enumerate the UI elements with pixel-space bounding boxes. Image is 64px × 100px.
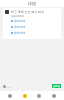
button[interactable]: 去处理 <box>52 84 61 88</box>
staticText: 审批详情 <box>14 31 26 35</box>
staticText: 张三 李四 王五 赵六 钱七 <box>11 10 45 14</box>
staticText: 审批详情 <box>14 25 26 29</box>
staticText: 发起的审批 <box>11 14 24 17</box>
staticText: 详情 <box>28 1 36 6</box>
button[interactable]: 审批详情 <box>11 25 59 29</box>
staticText: 审批详情 <box>14 19 26 23</box>
button[interactable]: nav3 <box>49 91 59 100</box>
button[interactable]: nav0 <box>5 91 15 100</box>
button[interactable]: 审批详情 <box>11 31 59 35</box>
staticText: 去处理 <box>53 85 60 88</box>
button[interactable]: 审批详情 <box>11 19 59 23</box>
button[interactable]: nav2 <box>34 91 44 100</box>
button[interactable]: nav1 <box>20 91 30 100</box>
staticText: 12 <box>7 85 10 88</box>
